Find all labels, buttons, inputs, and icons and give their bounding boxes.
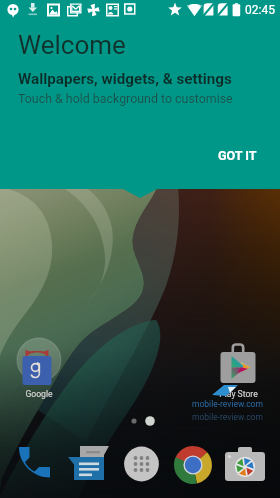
staticText: Welcome: [18, 30, 126, 60]
button[interactable]: Phone: [7, 441, 63, 491]
button[interactable]: Play Store: [212, 336, 264, 400]
button[interactable]: Apps: [113, 441, 169, 491]
staticText: Play Store: [219, 389, 258, 399]
button[interactable]: Google: [16, 336, 62, 400]
button[interactable]: GOT IT: [206, 139, 269, 172]
staticText: mobile-review.com: [192, 399, 263, 409]
staticText: GOT IT: [218, 148, 257, 163]
staticText: Wallpapers, widgets, & settings: [18, 70, 232, 88]
button[interactable]: Camera: [217, 441, 273, 491]
button[interactable]: Chrome: [165, 441, 221, 491]
staticText: 02:45: [245, 3, 275, 17]
staticText: mobile-review.com: [192, 412, 263, 422]
button[interactable]: Messages: [63, 441, 119, 491]
staticText: Google: [25, 389, 53, 399]
staticText: Touch & hold background to customise: [18, 91, 233, 106]
